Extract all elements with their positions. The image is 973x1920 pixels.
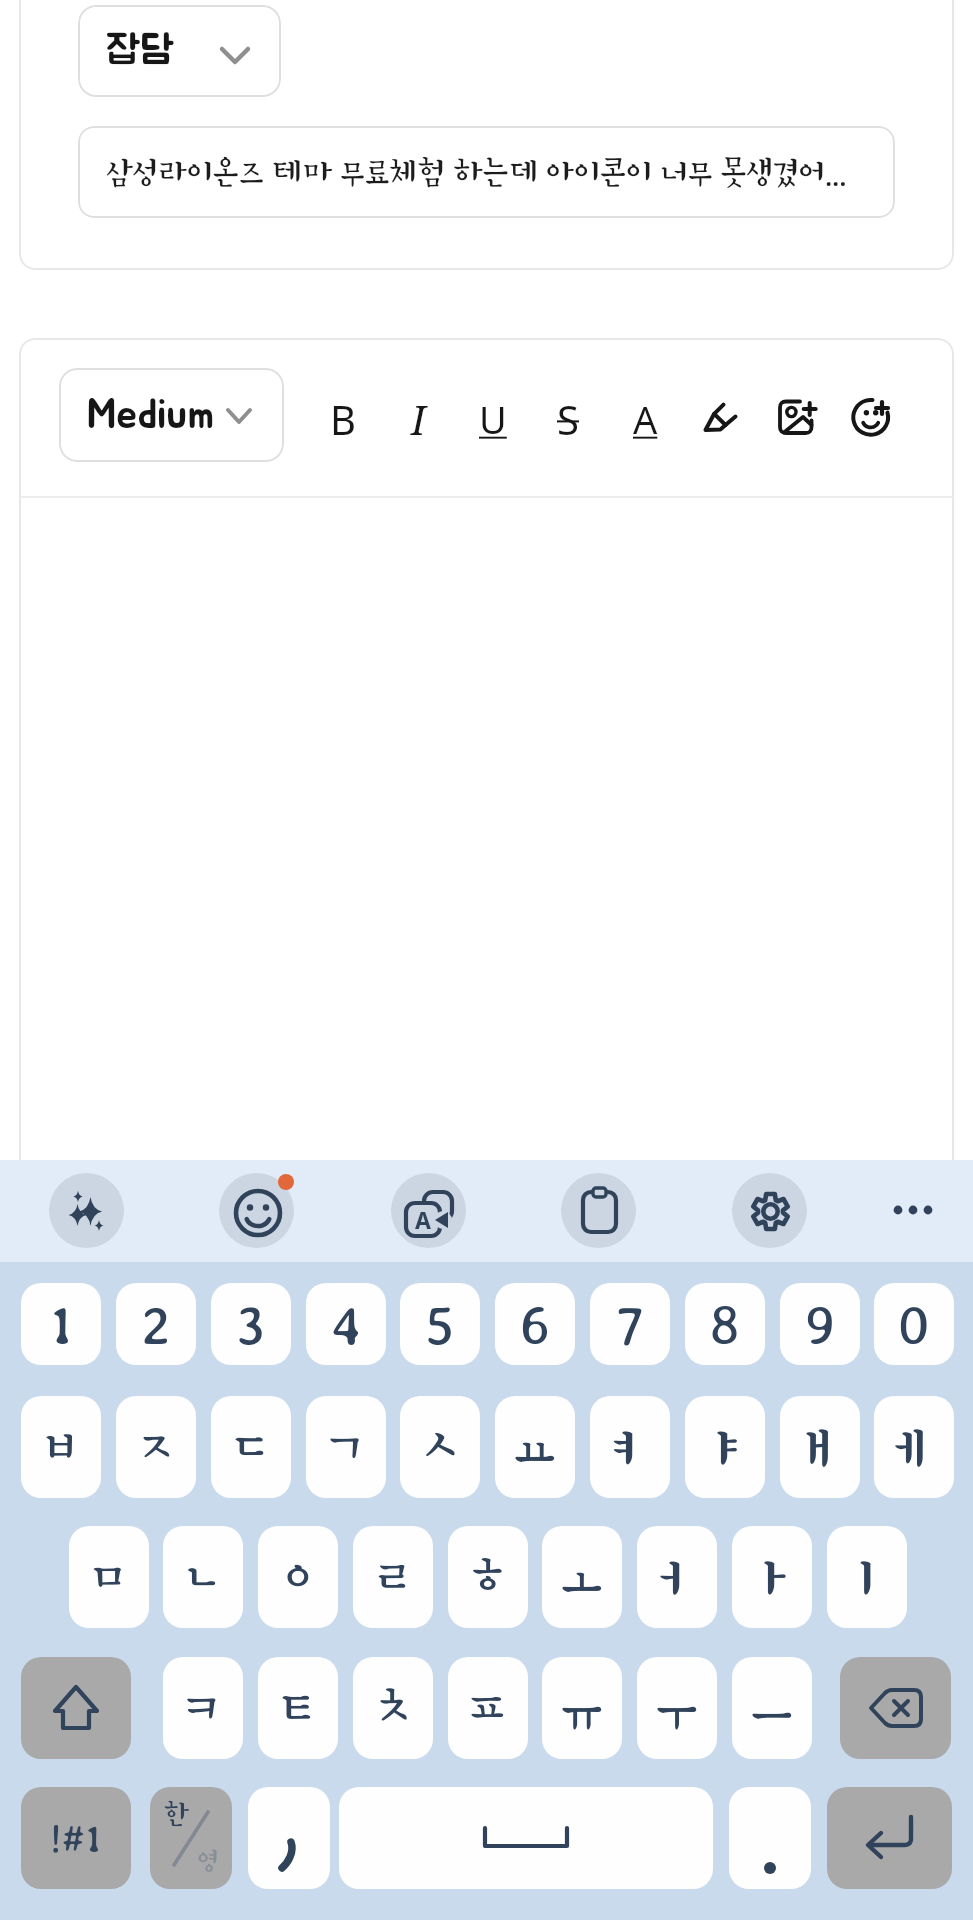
button[interactable]: 한: [150, 1787, 232, 1889]
staticText: ㅌ: [272, 1678, 324, 1738]
button[interactable]: ㅈ: [116, 1396, 196, 1498]
staticText: ㅓ: [651, 1547, 703, 1607]
staticText: ㅎ: [462, 1547, 514, 1607]
button[interactable]: [883, 1180, 943, 1240]
staticText: ㅗ: [556, 1547, 608, 1607]
button[interactable]: ㄹ: [353, 1526, 433, 1628]
staticText: ㅍ: [462, 1678, 514, 1738]
staticText: 4: [331, 1293, 362, 1355]
staticText: ㅡ: [746, 1678, 798, 1738]
button[interactable]: ㄱ: [306, 1396, 386, 1498]
button[interactable]: 삼성라이온즈 테마 무료체험 하는데 아이콘이 너무 못생겼어...: [78, 126, 895, 218]
button[interactable]: ㅡ: [732, 1657, 812, 1759]
staticText: 0: [898, 1293, 930, 1355]
button[interactable]: ㅣ: [827, 1526, 907, 1628]
staticText: ㅏ: [746, 1547, 798, 1607]
button[interactable]: !#1: [21, 1787, 131, 1889]
button[interactable]: ㅁ: [69, 1526, 149, 1628]
button[interactable]: ㅐ: [780, 1396, 860, 1498]
button[interactable]: 잡담: [78, 5, 281, 97]
staticText: 7: [616, 1293, 644, 1355]
button[interactable]: ㅇ: [258, 1526, 338, 1628]
staticText: 영: [197, 1847, 219, 1875]
button[interactable]: [827, 1787, 952, 1889]
button[interactable]: [773, 393, 825, 445]
button[interactable]: ㅔ: [874, 1396, 954, 1498]
button[interactable]: A: [615, 389, 675, 449]
staticText: ㅈ: [130, 1417, 182, 1477]
staticText: A: [415, 1204, 431, 1235]
button[interactable]: ㅜ: [637, 1657, 717, 1759]
button[interactable]: [840, 1657, 951, 1759]
button[interactable]: 8: [685, 1283, 765, 1365]
staticText: ㅇ: [272, 1547, 324, 1607]
button[interactable]: 6: [495, 1283, 575, 1365]
button[interactable]: ㅊ: [353, 1657, 433, 1759]
button[interactable]: ㅗ: [542, 1526, 622, 1628]
button[interactable]: 9: [780, 1283, 860, 1365]
staticText: 6: [520, 1293, 551, 1355]
button[interactable]: ㄴ: [163, 1526, 243, 1628]
staticText: 9: [805, 1293, 836, 1355]
button[interactable]: B: [313, 389, 373, 449]
staticText: ㅅ: [414, 1417, 466, 1477]
button[interactable]: ㅛ: [495, 1396, 575, 1498]
button[interactable]: [729, 1787, 811, 1889]
staticText: B: [330, 392, 356, 446]
button[interactable]: 0: [874, 1283, 954, 1365]
button[interactable]: ㅅ: [400, 1396, 480, 1498]
button[interactable]: ㅕ: [590, 1396, 670, 1498]
button[interactable]: 2: [116, 1283, 196, 1365]
staticText: 5: [425, 1293, 455, 1355]
staticText: 잡담: [106, 31, 174, 71]
button[interactable]: S: [538, 389, 598, 449]
staticText: ㅛ: [509, 1417, 561, 1477]
staticText: 3: [236, 1293, 266, 1355]
button[interactable]: 5: [400, 1283, 480, 1365]
button[interactable]: ㄷ: [211, 1396, 291, 1498]
staticText: A: [633, 393, 658, 445]
button[interactable]: ㅌ: [258, 1657, 338, 1759]
staticText: U: [479, 393, 507, 445]
staticText: Medium: [87, 394, 214, 436]
button[interactable]: 7: [590, 1283, 670, 1365]
button[interactable]: ㅓ: [637, 1526, 717, 1628]
button[interactable]: [219, 1173, 294, 1248]
button[interactable]: ㅠ: [542, 1657, 622, 1759]
button[interactable]: [697, 394, 745, 442]
staticText: ㅑ: [699, 1417, 751, 1477]
button[interactable]: ㅎ: [448, 1526, 528, 1628]
button[interactable]: Medium: [59, 368, 284, 462]
button[interactable]: 4: [306, 1283, 386, 1365]
staticText: ㅜ: [651, 1678, 703, 1738]
button[interactable]: ㅍ: [448, 1657, 528, 1759]
button[interactable]: 1: [21, 1283, 101, 1365]
staticText: ㅕ: [604, 1417, 656, 1477]
staticText: S: [557, 392, 579, 446]
button[interactable]: [732, 1173, 807, 1248]
staticText: !#1: [50, 1816, 102, 1860]
button[interactable]: ㅑ: [685, 1396, 765, 1498]
button[interactable]: [49, 1173, 124, 1248]
staticText: ㅔ: [888, 1417, 940, 1477]
button[interactable]: ㅏ: [732, 1526, 812, 1628]
button[interactable]: 3: [211, 1283, 291, 1365]
button[interactable]: [339, 1787, 713, 1889]
button[interactable]: A: [391, 1173, 466, 1248]
button[interactable]: ㅋ: [163, 1657, 243, 1759]
staticText: ㅁ: [83, 1547, 135, 1607]
button[interactable]: ㅂ: [21, 1396, 101, 1498]
button[interactable]: [850, 396, 898, 444]
button[interactable]: I: [388, 389, 448, 449]
staticText: 2: [141, 1293, 171, 1355]
staticText: ㄹ: [367, 1547, 419, 1607]
button[interactable]: [561, 1173, 636, 1248]
staticText: 8: [710, 1293, 740, 1355]
staticText: I: [411, 392, 426, 446]
button[interactable]: [21, 1657, 131, 1759]
staticText: ㅂ: [35, 1417, 87, 1477]
button[interactable]: [248, 1787, 330, 1889]
button[interactable]: U: [463, 389, 523, 449]
staticText: ㄴ: [177, 1547, 229, 1607]
